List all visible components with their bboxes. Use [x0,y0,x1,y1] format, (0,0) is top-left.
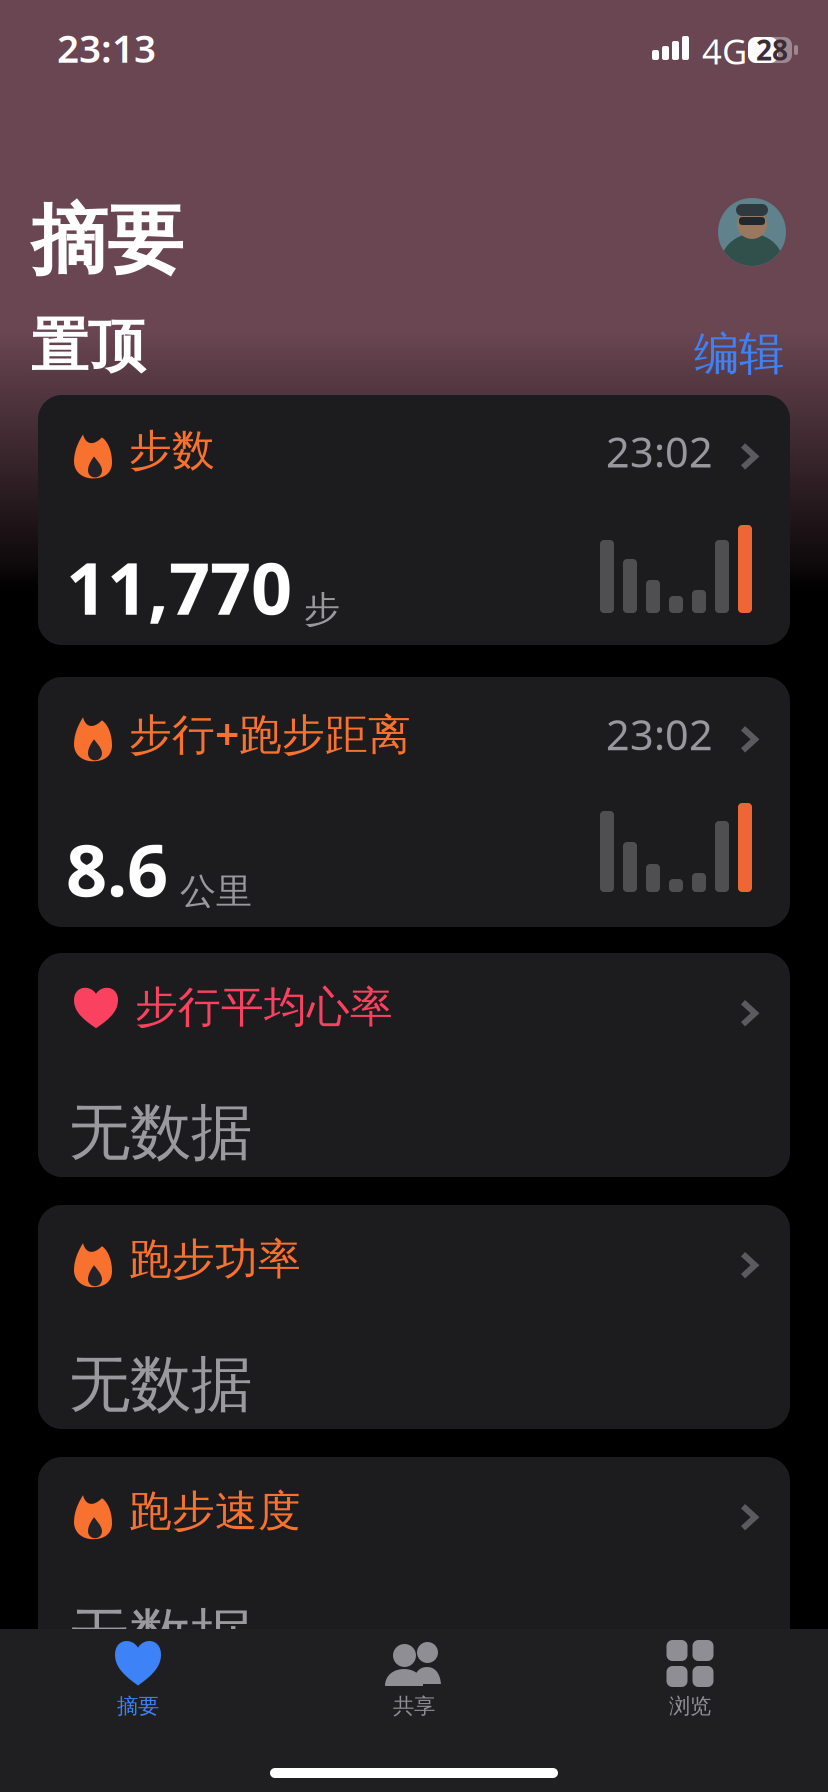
staticText: 跑步速度 [129,1485,301,1537]
staticText: 置顶 [31,311,145,381]
button[interactable]: 浏览 [552,1640,828,1719]
staticText: 11,770 [66,539,292,635]
staticText: 23:02 [606,707,713,762]
staticText: 步数 [129,424,215,477]
button[interactable]: 个人资料 [718,198,786,266]
staticText: 摘要 [117,1693,159,1719]
staticText: 4G [702,28,747,74]
staticText: 编辑 [694,326,784,382]
staticText: 8.6 [66,821,168,917]
staticText: 步行平均心率 [135,981,393,1033]
staticText: 公里 [180,869,252,914]
staticText: 跑步功率 [129,1233,301,1285]
staticText: 无数据 [69,1599,252,1674]
button[interactable]: 编辑 [694,326,784,382]
button[interactable]: 跑步功率 [38,1205,790,1429]
button[interactable]: 摘要 [0,1640,276,1719]
staticText: 摘要 [31,194,183,287]
button[interactable]: 跑步速度 [38,1457,790,1707]
staticText: 浏览 [669,1693,711,1719]
staticText: 步 [304,587,340,632]
staticText: 无数据 [69,1347,252,1422]
staticText: 23:13 [57,22,156,73]
button[interactable]: 步行+跑步距离 [38,677,790,927]
button[interactable]: 共享 [276,1640,552,1719]
button[interactable]: 步行平均心率 [38,953,790,1177]
staticText: 共享 [393,1693,435,1719]
staticText: 28 [756,31,788,68]
staticText: 无数据 [69,1095,252,1170]
staticText: 步行+跑步距离 [129,705,411,762]
button[interactable]: 步数 [38,395,790,645]
staticText: 23:02 [606,424,713,479]
